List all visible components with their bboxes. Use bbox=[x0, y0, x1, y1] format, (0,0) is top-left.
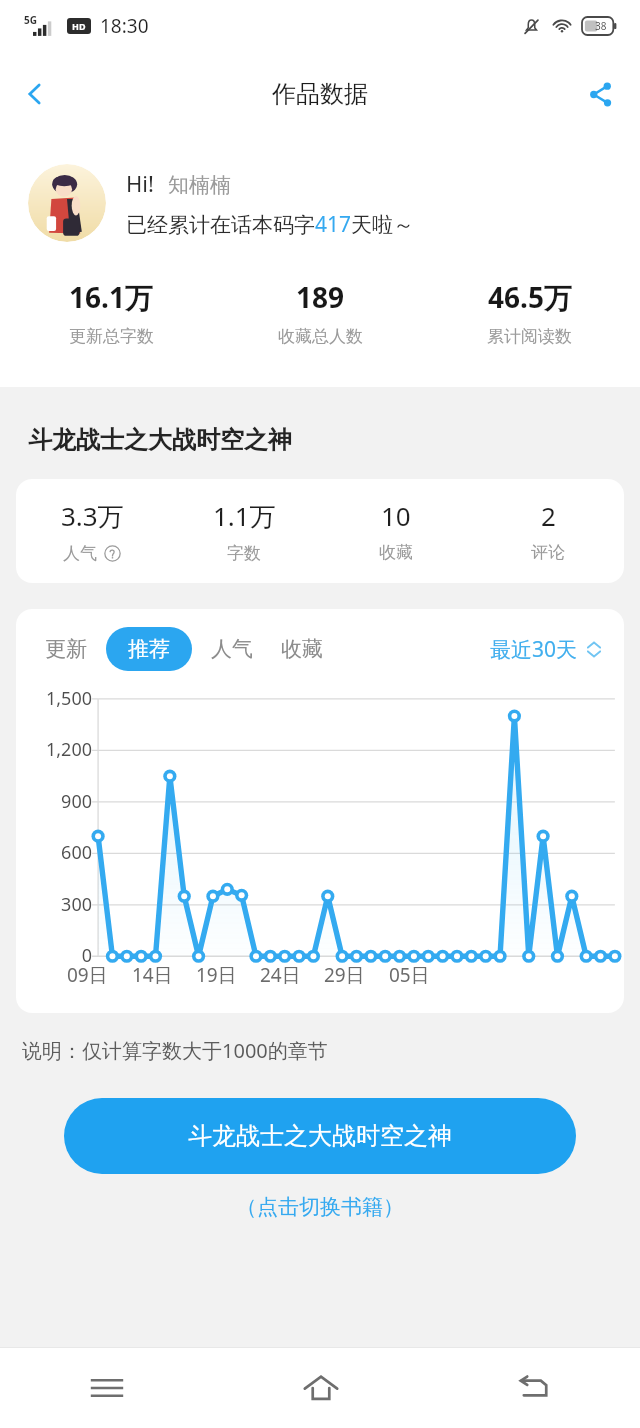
staticText: 38 bbox=[595, 19, 607, 33]
button[interactable]: 收藏 bbox=[272, 627, 332, 671]
staticText: 知楠楠 bbox=[168, 172, 231, 198]
staticText: 字数 bbox=[227, 543, 261, 564]
staticText: 人气 bbox=[211, 636, 253, 662]
staticText: 更新总字数 bbox=[69, 326, 154, 347]
staticText: 5G bbox=[24, 13, 37, 27]
staticText: 09日 bbox=[67, 962, 108, 988]
button[interactable]: 主页 bbox=[214, 1348, 427, 1428]
button[interactable]: 2 bbox=[472, 498, 624, 563]
staticText: 人气 bbox=[63, 543, 97, 564]
staticText: 29日 bbox=[324, 962, 365, 988]
button[interactable]: 最近30天 bbox=[486, 631, 606, 668]
staticText: 600 bbox=[16, 840, 92, 865]
staticText: HD bbox=[72, 20, 86, 32]
staticText: 作品数据 bbox=[272, 79, 368, 109]
staticText: 24日 bbox=[260, 962, 301, 988]
staticText: 05日 bbox=[389, 962, 430, 988]
button[interactable]: 头像 bbox=[28, 164, 106, 242]
button[interactable]: 返回 bbox=[6, 65, 64, 123]
staticText: 斗龙战士之大战时空之神 bbox=[188, 1121, 452, 1151]
staticText: 最近30天 bbox=[490, 635, 578, 664]
staticText: 推荐 bbox=[128, 636, 170, 662]
staticText: 300 bbox=[16, 892, 92, 917]
staticText: 2 bbox=[541, 498, 556, 533]
staticText: 19日 bbox=[196, 962, 237, 988]
button[interactable]: 人气 bbox=[202, 627, 262, 671]
staticText: 更新 bbox=[45, 636, 87, 662]
button[interactable]: 更新 bbox=[36, 627, 96, 671]
button[interactable]: 斗龙战士之大战时空之神 bbox=[64, 1098, 576, 1174]
staticText: 189 bbox=[296, 278, 345, 316]
button[interactable]: 分享 bbox=[572, 66, 628, 122]
button[interactable]: （点击切换书籍） bbox=[230, 1188, 410, 1226]
staticText: 900 bbox=[16, 789, 92, 814]
button[interactable]: 1.1万 bbox=[168, 498, 320, 564]
staticText: 累计阅读数 bbox=[487, 326, 572, 347]
staticText: 1,500 bbox=[16, 686, 92, 711]
staticText: 收藏总人数 bbox=[278, 326, 363, 347]
button[interactable]: 推荐 bbox=[106, 627, 192, 671]
button[interactable]: 189 bbox=[216, 278, 425, 347]
staticText: 3.3万 bbox=[61, 498, 124, 534]
staticText: 收藏 bbox=[379, 542, 413, 563]
staticText: 说明：仅计算字数大于1000的章节 bbox=[22, 1037, 328, 1064]
staticText: 18:30 bbox=[100, 13, 149, 39]
button[interactable]: 最近任务 bbox=[0, 1348, 214, 1428]
button[interactable]: 3.3万 bbox=[16, 498, 168, 564]
button[interactable]: 16.1万 bbox=[6, 278, 216, 347]
button[interactable]: 46.5万 bbox=[425, 278, 634, 347]
button[interactable]: 10 bbox=[320, 498, 472, 563]
staticText: 1.1万 bbox=[213, 498, 276, 534]
staticText: 10 bbox=[381, 498, 411, 533]
staticText: 评论 bbox=[531, 542, 565, 563]
button[interactable]: 返回 bbox=[427, 1348, 640, 1428]
staticText: 斗龙战士之大战时空之神 bbox=[28, 425, 292, 455]
staticText: 1,200 bbox=[16, 737, 92, 762]
staticText: 已经累计在话本码字417天啦～ bbox=[126, 210, 415, 239]
staticText: 14日 bbox=[132, 962, 173, 988]
staticText: 46.5万 bbox=[488, 278, 572, 316]
staticText: 0 bbox=[16, 943, 92, 968]
staticText: Hi! bbox=[126, 168, 154, 198]
staticText: 16.1万 bbox=[69, 278, 153, 316]
staticText: 收藏 bbox=[281, 636, 323, 662]
